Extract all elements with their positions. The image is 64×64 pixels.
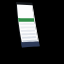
button[interactable]: Phone app screen mockup: [0, 0, 64, 64]
